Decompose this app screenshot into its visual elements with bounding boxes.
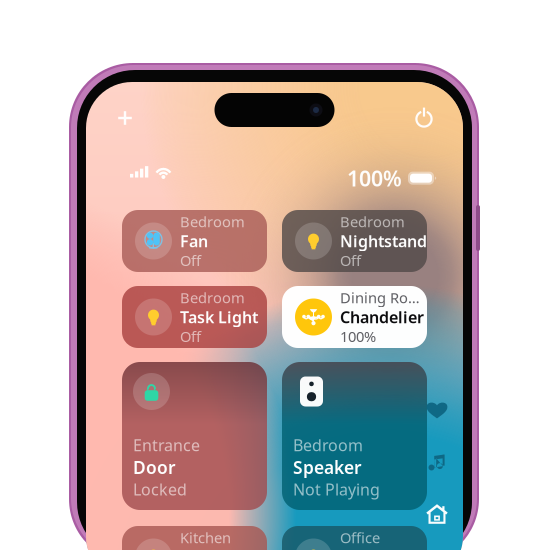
staticText: Office [340,528,380,547]
button[interactable]: Favorites [425,398,449,422]
staticText: Task Light [180,306,258,328]
staticText: Bedroom [293,434,363,456]
staticText: Dining Room [340,288,428,307]
staticText: Locked [133,479,187,500]
staticText: Nightstand [340,230,427,252]
button[interactable]: Home [425,502,449,526]
button[interactable]: Bedroom [122,286,267,348]
staticText: Bedroom [180,212,245,231]
staticText: Not Playing [293,479,380,500]
staticText: Chandelier [340,306,424,328]
staticText: Bedroom [340,212,405,231]
staticText: Fan [180,230,208,252]
button[interactable]: Power options [406,100,442,136]
button[interactable]: Kitchen [122,526,267,550]
staticText: Kitchen [180,528,231,547]
button[interactable]: Bedroom [282,362,427,510]
button[interactable]: Entrance [122,362,267,510]
button[interactable]: Office [282,526,427,550]
staticText: Off [340,251,361,270]
staticText: Speaker [293,456,362,479]
staticText: 100% [347,164,402,192]
staticText: Bedroom [180,288,245,307]
staticText: Off [180,251,201,270]
button[interactable]: Bedroom [282,210,427,272]
staticText: Entrance [133,434,200,456]
staticText: Door [133,456,176,479]
button[interactable]: Bedroom [122,210,267,272]
button[interactable]: Add [107,100,143,136]
button[interactable]: Media [425,450,449,474]
staticText: Off [180,327,201,346]
staticText: 100% [340,327,376,346]
button[interactable]: Dining Room [282,286,427,348]
